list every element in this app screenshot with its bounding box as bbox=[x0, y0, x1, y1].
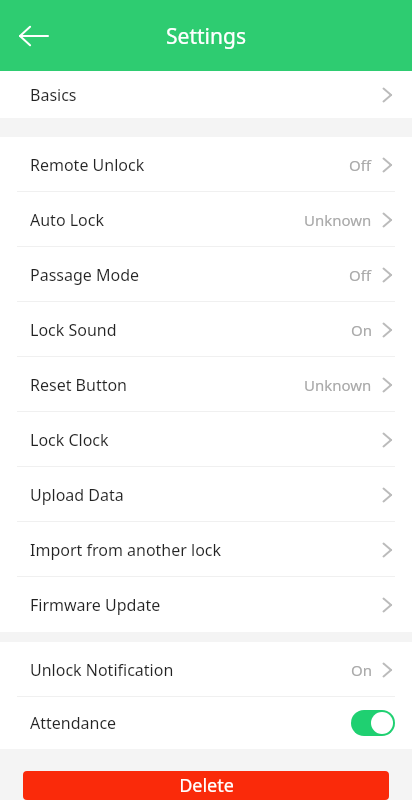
staticText: Remote Unlock bbox=[30, 154, 145, 176]
staticText: On bbox=[351, 660, 372, 680]
staticText: Attendance bbox=[30, 712, 117, 734]
staticText: Passage Mode bbox=[30, 264, 140, 286]
staticText: Lock Sound bbox=[30, 319, 117, 341]
button[interactable]: Unlock Notification bbox=[0, 642, 412, 697]
button[interactable]: Delete bbox=[23, 771, 389, 800]
button[interactable]: Lock Clock bbox=[0, 412, 412, 467]
button[interactable]: Reset Button bbox=[0, 357, 412, 412]
button[interactable]: Auto Lock bbox=[0, 192, 412, 247]
staticText: Off bbox=[349, 155, 372, 175]
button[interactable]: Passage Mode bbox=[0, 247, 412, 302]
button[interactable]: Back bbox=[8, 10, 60, 62]
button[interactable]: Firmware Update bbox=[0, 577, 412, 632]
staticText: Auto Lock bbox=[30, 209, 105, 231]
staticText: Upload Data bbox=[30, 484, 124, 506]
staticText: Unlock Notification bbox=[30, 659, 174, 681]
button[interactable]: Remote Unlock bbox=[0, 137, 412, 192]
staticText: Unknown bbox=[304, 375, 372, 395]
staticText: Unknown bbox=[304, 210, 372, 230]
staticText: Firmware Update bbox=[30, 594, 161, 616]
staticText: Basics bbox=[30, 84, 77, 106]
staticText: Lock Clock bbox=[30, 429, 109, 451]
staticText: On bbox=[351, 320, 372, 340]
button[interactable]: Lock Sound bbox=[0, 302, 412, 357]
staticText: Import from another lock bbox=[30, 539, 222, 561]
button[interactable]: Upload Data bbox=[0, 467, 412, 522]
button[interactable]: Basics bbox=[0, 71, 412, 118]
staticText: Settings bbox=[166, 22, 246, 51]
staticText: Reset Button bbox=[30, 374, 128, 396]
staticText: Delete bbox=[179, 773, 234, 798]
button[interactable]: Attendance toggle bbox=[351, 710, 395, 736]
staticText: Off bbox=[349, 265, 372, 285]
button[interactable]: Attendance bbox=[0, 697, 412, 749]
button[interactable]: Import from another lock bbox=[0, 522, 412, 577]
